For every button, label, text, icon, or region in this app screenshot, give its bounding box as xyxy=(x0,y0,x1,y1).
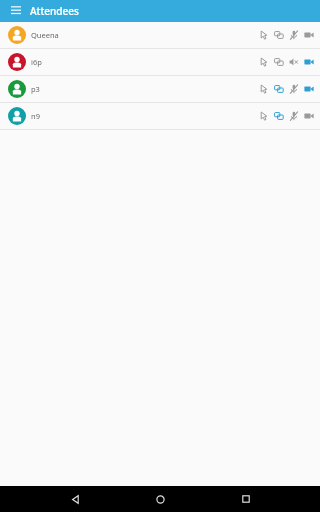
button[interactable]: Pointer xyxy=(258,110,270,122)
button[interactable]: Pointer xyxy=(258,29,270,41)
staticText: n9 xyxy=(31,111,40,121)
button[interactable]: Open navigation menu xyxy=(8,3,24,19)
button[interactable]: Home xyxy=(149,488,171,510)
button[interactable]: Recent apps xyxy=(235,488,257,510)
button[interactable]: Video camera xyxy=(303,110,315,122)
staticText: i6p xyxy=(31,57,42,67)
button[interactable]: n9 xyxy=(0,103,320,129)
button[interactable]: Chat xyxy=(273,110,285,122)
button[interactable]: Pointer xyxy=(258,83,270,95)
staticText: Queena xyxy=(31,30,59,40)
button[interactable]: Chat xyxy=(273,83,285,95)
button[interactable]: Pointer xyxy=(258,56,270,68)
button[interactable]: i6p xyxy=(0,49,320,75)
button[interactable]: Chat xyxy=(273,29,285,41)
button[interactable]: Video camera xyxy=(303,83,315,95)
button[interactable]: Microphone xyxy=(288,110,300,122)
button[interactable]: Back xyxy=(64,488,86,510)
button[interactable]: Microphone xyxy=(288,29,300,41)
staticText: p3 xyxy=(31,84,40,94)
button[interactable]: Video camera xyxy=(303,56,315,68)
staticText: Attendees xyxy=(30,4,79,18)
button[interactable]: Speaker muted xyxy=(288,56,300,68)
button[interactable]: Queena xyxy=(0,22,320,48)
button[interactable]: Video camera xyxy=(303,29,315,41)
button[interactable]: Chat xyxy=(273,56,285,68)
button[interactable]: p3 xyxy=(0,76,320,102)
button[interactable]: Microphone xyxy=(288,83,300,95)
